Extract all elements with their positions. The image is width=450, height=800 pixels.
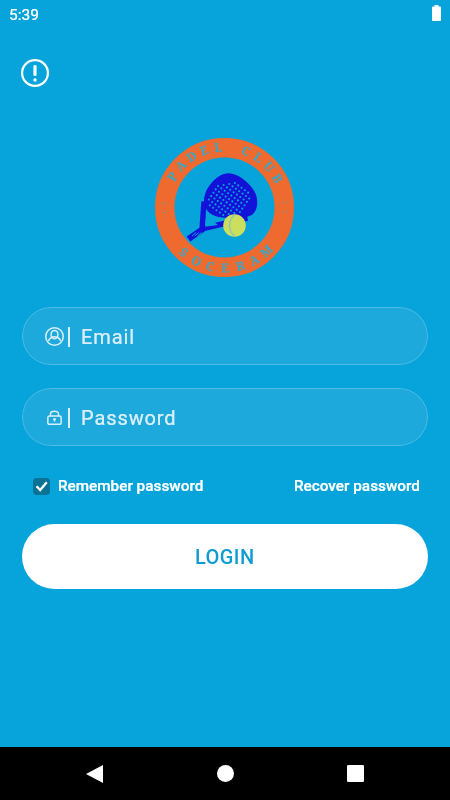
button[interactable]: Remember password — [33, 477, 204, 495]
button[interactable]: Back — [64, 747, 124, 800]
staticText: Remember password — [58, 477, 204, 495]
staticText: LOGIN — [195, 545, 255, 568]
button[interactable]: Password — [22, 388, 428, 446]
staticText: Password — [81, 406, 177, 429]
button[interactable]: Recover password — [294, 477, 420, 495]
button[interactable]: Recent apps — [325, 747, 385, 800]
button[interactable]: Email — [22, 307, 428, 365]
staticText: 5:39 — [9, 6, 39, 24]
staticText: Email — [81, 325, 136, 348]
staticText: Recover password — [294, 477, 420, 495]
button[interactable]: Home — [195, 747, 255, 800]
button[interactable]: LOGIN — [22, 524, 428, 589]
button[interactable]: Information — [18, 56, 52, 90]
